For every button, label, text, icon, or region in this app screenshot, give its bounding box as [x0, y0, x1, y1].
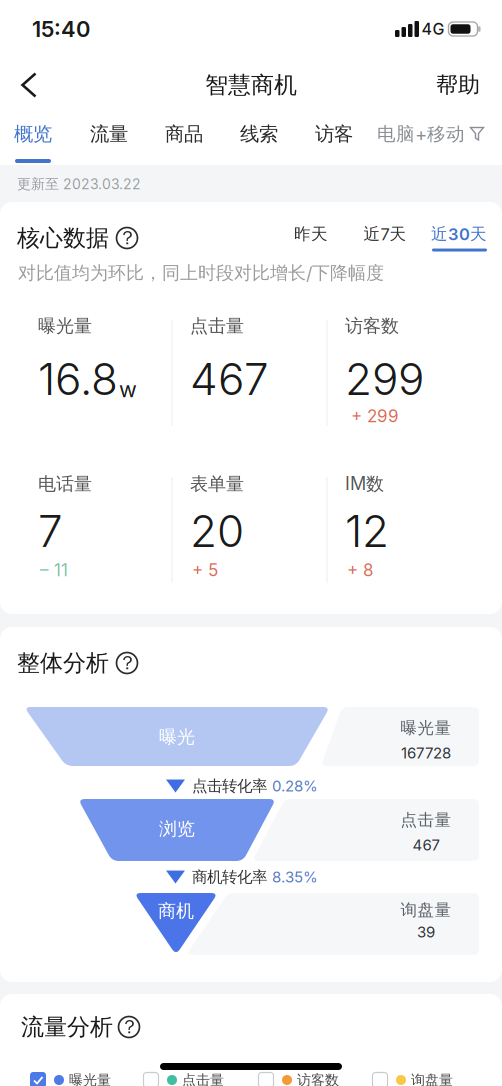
staticText: 商机转化率: [192, 867, 267, 887]
button[interactable]: 曝光量: [30, 1071, 111, 1086]
staticText: 流量分析: [21, 1012, 113, 1041]
staticText: 线索: [240, 122, 278, 146]
staticText: 核心数据: [17, 223, 109, 252]
staticText: 访客数: [345, 315, 399, 337]
staticText: 昨天: [294, 224, 328, 244]
staticText: – 11: [40, 560, 68, 580]
staticText: 近30天: [431, 224, 487, 244]
staticText: 流量: [90, 122, 128, 146]
staticText: 曝光: [159, 726, 195, 748]
button[interactable]: 说明: [115, 651, 138, 674]
staticText: 467: [190, 352, 269, 406]
staticText: 智慧商机: [205, 70, 297, 99]
button[interactable]: 说明: [117, 1015, 140, 1038]
staticText: 167728: [401, 744, 451, 762]
staticText: 表单量: [190, 473, 244, 495]
staticText: + 5: [192, 560, 218, 580]
staticText: 39: [417, 923, 435, 941]
button[interactable]: 返回: [19, 71, 39, 98]
staticText: 浏览: [159, 818, 195, 840]
button[interactable]: 概览: [14, 122, 52, 146]
button[interactable]: 访客数: [258, 1071, 339, 1086]
button[interactable]: 商品: [165, 122, 203, 146]
button[interactable]: 线索: [240, 122, 278, 146]
staticText: 更新至 2023.03.22: [17, 175, 141, 193]
staticText: 访客数: [297, 1071, 339, 1086]
button[interactable]: 帮助: [436, 71, 480, 99]
staticText: 曝光量: [400, 718, 451, 738]
staticText: 点击量: [190, 315, 244, 337]
button[interactable]: 近30天: [431, 224, 487, 244]
staticText: ？: [120, 1015, 139, 1039]
staticText: 询盘量: [411, 1071, 453, 1086]
button[interactable]: 昨天: [294, 224, 328, 244]
staticText: + 8: [347, 560, 374, 580]
staticText: ？: [118, 651, 137, 675]
staticText: 帮助: [436, 71, 480, 99]
button[interactable]: 访客: [315, 122, 353, 146]
staticText: 20: [190, 504, 244, 558]
button[interactable]: 询盘量: [372, 1071, 453, 1086]
staticText: 整体分析: [17, 648, 109, 677]
staticText: 8.35%: [272, 868, 318, 886]
staticText: 15:40: [32, 16, 90, 42]
staticText: 电话量: [38, 473, 92, 495]
staticText: 访客: [315, 122, 353, 146]
staticText: 点击量: [182, 1071, 224, 1086]
staticText: 点击转化率: [192, 776, 267, 796]
button[interactable]: 流量: [90, 122, 128, 146]
staticText: IM数: [345, 473, 384, 495]
staticText: 曝光量: [69, 1071, 111, 1086]
button[interactable]: 说明: [115, 226, 138, 249]
staticText: ？: [118, 226, 137, 250]
staticText: 商品: [165, 122, 203, 146]
staticText: 4G: [421, 19, 444, 39]
staticText: 概览: [14, 122, 52, 146]
staticText: + 299: [351, 406, 399, 426]
staticText: 299: [345, 352, 424, 406]
staticText: 16.8: [38, 352, 118, 406]
staticText: 电脑+移动: [377, 122, 465, 146]
staticText: 曝光量: [38, 315, 92, 337]
staticText: 点击量: [400, 810, 451, 830]
staticText: 近7天: [363, 224, 406, 244]
staticText: 询盘量: [400, 900, 451, 920]
staticText: 467: [412, 836, 439, 854]
button[interactable]: 点击量: [143, 1071, 224, 1086]
staticText: 商机: [158, 900, 194, 922]
staticText: 对比值均为环比，同上时段对比增长/下降幅度: [18, 262, 384, 284]
staticText: 7: [38, 504, 63, 558]
button[interactable]: 近7天: [363, 224, 406, 244]
staticText: w: [119, 376, 137, 403]
staticText: 0.28%: [272, 777, 318, 795]
button[interactable]: 电脑+移动: [377, 122, 485, 146]
staticText: 12: [345, 504, 389, 558]
